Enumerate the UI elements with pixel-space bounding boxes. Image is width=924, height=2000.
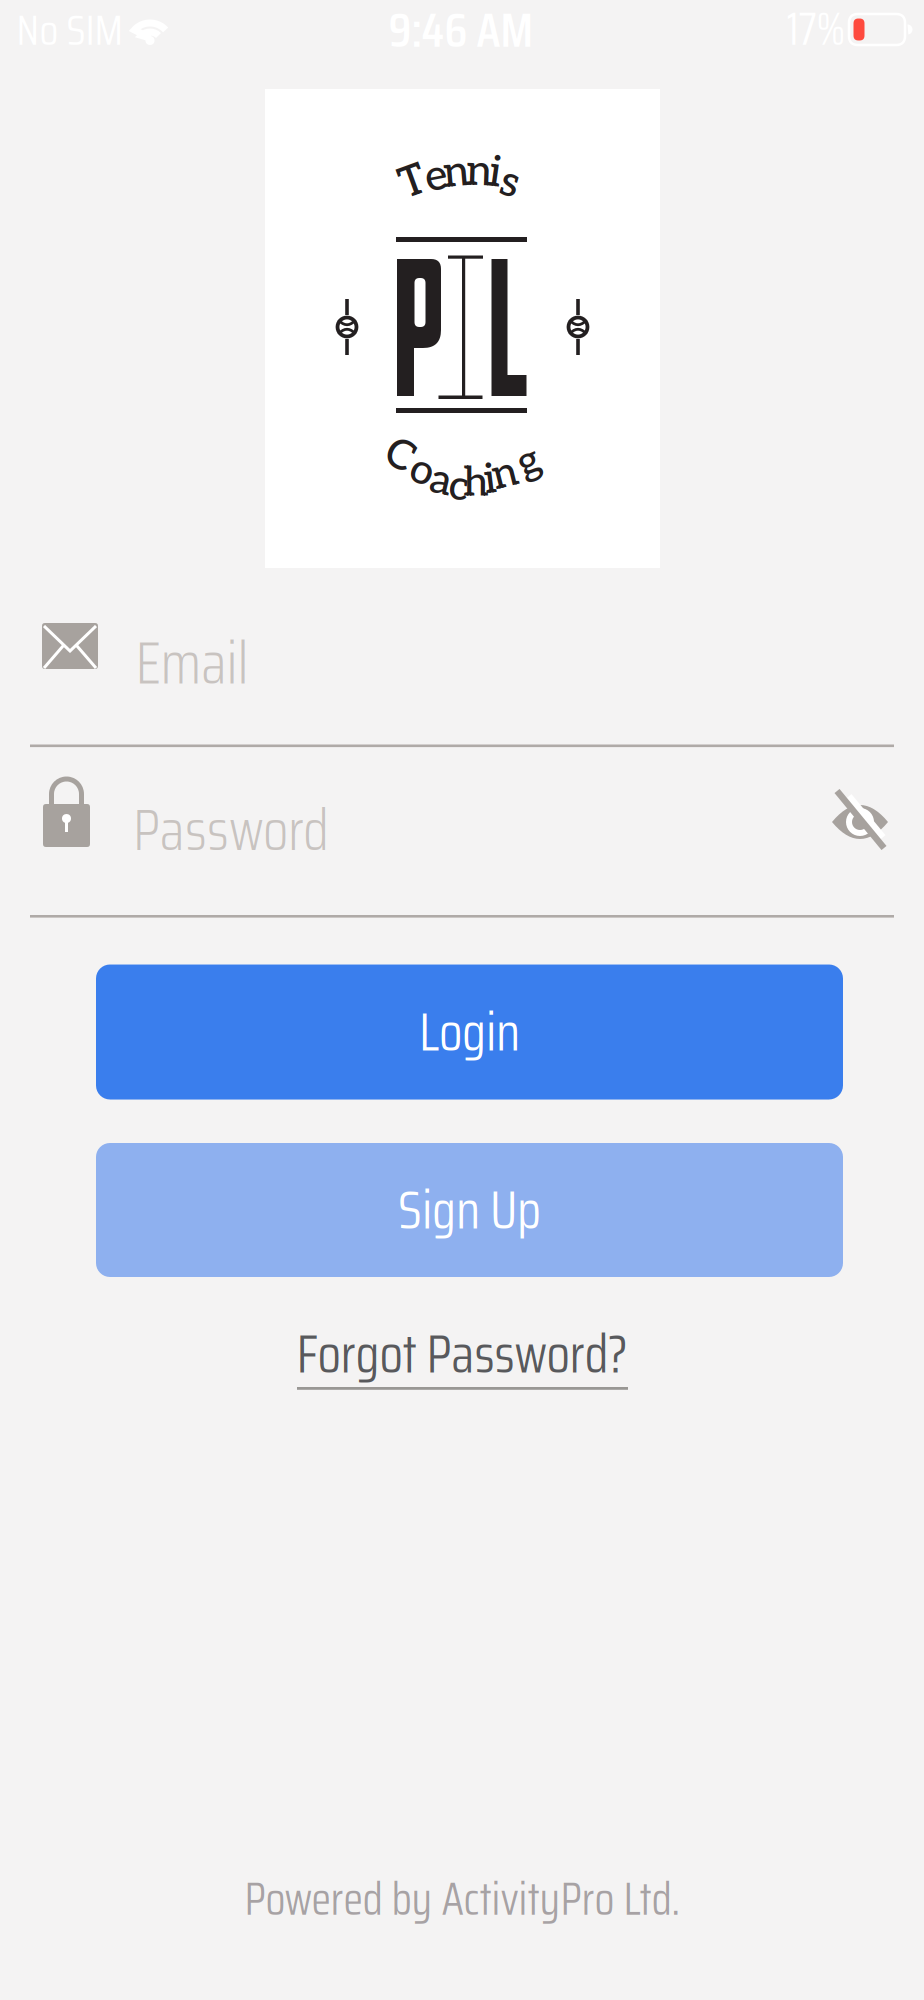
staticText: h — [463, 458, 489, 508]
staticText: No SIM — [16, 0, 123, 64]
staticText: i — [484, 455, 496, 505]
staticText: n — [443, 147, 469, 199]
button[interactable]: Show password — [828, 786, 892, 858]
button[interactable]: Sign Up — [96, 1143, 843, 1277]
staticText: a — [430, 456, 452, 506]
button[interactable]: Forgot Password? — [296, 1312, 627, 1396]
staticText: Sign Up — [398, 1168, 541, 1252]
staticText: 9:46 AM — [388, 0, 533, 68]
staticText: n — [466, 146, 492, 198]
staticText: T — [400, 156, 426, 208]
staticText: Password — [133, 785, 329, 875]
staticText: n — [492, 449, 518, 499]
staticText: o — [410, 446, 433, 496]
staticText: i — [489, 147, 501, 199]
staticText: Forgot Password? — [296, 1312, 627, 1396]
staticText: e — [425, 151, 447, 203]
button[interactable]: Email — [30, 622, 894, 742]
staticText: Email — [135, 617, 248, 709]
staticText: C — [386, 431, 414, 481]
staticText: Login — [419, 990, 520, 1074]
staticText: s — [501, 157, 519, 209]
staticText: g — [518, 437, 539, 487]
staticText: 17% — [786, 0, 845, 65]
staticText: c — [449, 462, 469, 512]
button[interactable]: Password — [30, 792, 894, 912]
staticText: Powered by ActivityPro Ltd. — [244, 1863, 679, 1935]
button[interactable]: Login — [96, 964, 843, 1099]
